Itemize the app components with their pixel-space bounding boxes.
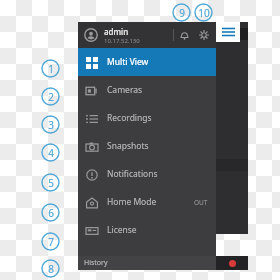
staticText: Multi View [107,56,216,68]
staticText: Recordings [107,112,216,124]
staticText: 2 [48,90,54,104]
staticText: Home Mode [107,196,194,208]
button[interactable]: Snapshots [78,132,216,160]
staticText: History [84,258,108,268]
staticText: admin [104,26,129,37]
button[interactable]: Settings [194,25,214,45]
button[interactable]: Cameras [78,76,216,104]
staticText: Cameras [107,84,216,96]
button[interactable]: Notifications [174,25,194,45]
staticText: 10.17.52.130 [104,37,140,45]
button[interactable]: Multi View [78,48,216,76]
staticText: Notifications [107,168,216,180]
staticText: 8 [48,262,54,276]
button[interactable]: License [78,216,216,244]
staticText: 9 [179,6,185,20]
staticText: AM [218,29,228,37]
staticText: 5 [48,176,54,190]
staticText: 7 [48,235,54,249]
staticText: License [107,224,216,236]
button[interactable]: admin [78,22,216,48]
staticText: 6 [48,206,54,220]
button[interactable]: Recordings [78,104,216,132]
staticText: 1 [48,62,54,76]
staticText: 10 [198,6,210,20]
staticText: 3 [48,118,54,132]
staticText: 4 [48,146,54,160]
button[interactable]: Notifications [78,160,216,188]
button[interactable]: History [78,256,216,270]
button[interactable]: Menu [216,22,240,42]
staticText: Snapshots [107,140,216,152]
button[interactable]: Home Mode [78,188,216,216]
staticText: OUT [194,198,208,207]
